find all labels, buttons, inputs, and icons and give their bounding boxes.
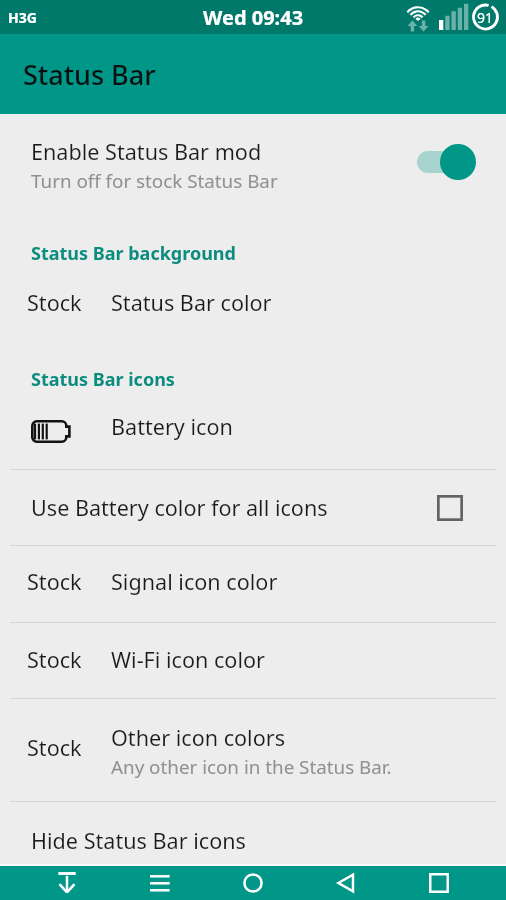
staticText: Status Bar color xyxy=(111,288,272,317)
button[interactable]: Menu xyxy=(126,866,194,900)
staticText: Wed 09:43 xyxy=(203,4,304,31)
staticText: Hide Status Bar icons xyxy=(31,826,246,855)
button[interactable]: Back xyxy=(312,866,380,900)
staticText: Signal icon color xyxy=(111,567,278,596)
button[interactable]: Pull down notifications xyxy=(33,866,101,900)
button[interactable]: Enable Status Bar mod xyxy=(0,114,506,210)
staticText: Enable Status Bar mod xyxy=(31,137,262,166)
button[interactable]: Home xyxy=(219,866,287,900)
staticText: Status Bar background xyxy=(31,241,236,266)
button[interactable]: Hide Status Bar icons xyxy=(0,802,506,862)
button[interactable]: Use Battery color for all icons xyxy=(0,470,506,545)
button[interactable]: Battery icon xyxy=(0,400,506,460)
staticText: Battery icon xyxy=(111,412,233,441)
staticText: Stock xyxy=(27,567,82,596)
staticText: Use Battery color for all icons xyxy=(31,493,328,522)
staticText: Any other icon in the Status Bar. xyxy=(111,754,392,780)
button[interactable]: Stock xyxy=(0,546,506,622)
staticText: Status Bar xyxy=(23,56,156,93)
staticText: Turn off for stock Status Bar xyxy=(31,168,278,194)
staticText: Stock xyxy=(27,733,82,762)
button[interactable]: Stock xyxy=(0,623,506,698)
staticText: Stock xyxy=(27,645,82,674)
staticText: H3G xyxy=(8,8,37,27)
staticText: Status Bar icons xyxy=(31,367,175,392)
staticText: Wi-Fi icon color xyxy=(111,645,265,674)
button[interactable]: Stock xyxy=(0,274,506,330)
staticText: 91 xyxy=(477,8,494,27)
button[interactable]: Stock xyxy=(0,699,506,801)
button[interactable]: Recents xyxy=(405,866,473,900)
staticText: Stock xyxy=(27,288,82,317)
staticText: Other icon colors xyxy=(111,723,286,752)
